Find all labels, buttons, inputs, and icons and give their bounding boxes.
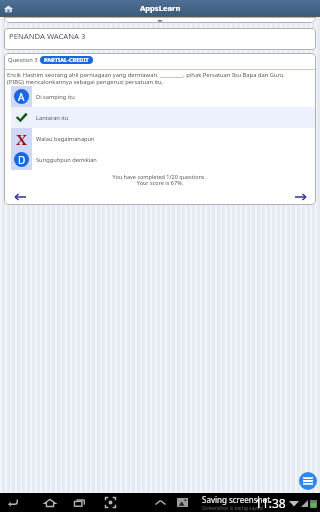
- staticText: 11:38: [255, 495, 286, 511]
- button[interactable]: X: [4, 128, 316, 149]
- staticText: Sungguhpun demikian: [36, 156, 97, 164]
- staticText: Walau bagaimanapun: [36, 135, 95, 143]
- button[interactable]: D: [4, 149, 316, 170]
- button[interactable]: A: [4, 86, 316, 107]
- staticText: D: [18, 153, 26, 167]
- button[interactable]: Lantaran itu: [4, 107, 316, 128]
- staticText: Encik Hashim seorang ahli perniagaan yan…: [7, 71, 286, 86]
- staticText: Question 3: [8, 56, 38, 64]
- staticText: PENANDA WACANA 3: [9, 31, 86, 41]
- staticText: AppsLearn: [140, 3, 181, 13]
- button[interactable]: Screenshot: [100, 493, 121, 512]
- button[interactable]: Back: [2, 493, 23, 512]
- button[interactable]: Expand notifications: [150, 493, 170, 512]
- button[interactable]: Next: [290, 190, 310, 204]
- staticText: Screenshot is being saved: [202, 505, 263, 512]
- staticText: X: [16, 129, 27, 149]
- button[interactable]: Previous: [10, 190, 30, 204]
- button[interactable]: Home: [39, 493, 60, 512]
- staticText: PARTIAL-CREDIT: [44, 56, 89, 64]
- staticText: Saving screenshot: [202, 494, 271, 505]
- button[interactable]: Home: [2, 2, 15, 15]
- staticText: Di samping itu: [36, 93, 75, 101]
- button[interactable]: PENANDA WACANA 3: [4, 28, 316, 50]
- staticText: Lantaran itu: [36, 114, 69, 122]
- staticText: You have completed 1/20 questions . Your…: [4, 173, 316, 187]
- button[interactable]: [4, 17, 316, 23]
- button[interactable]: Recent apps: [69, 493, 90, 512]
- button[interactable]: Menu: [299, 472, 317, 490]
- staticText: A: [18, 90, 25, 104]
